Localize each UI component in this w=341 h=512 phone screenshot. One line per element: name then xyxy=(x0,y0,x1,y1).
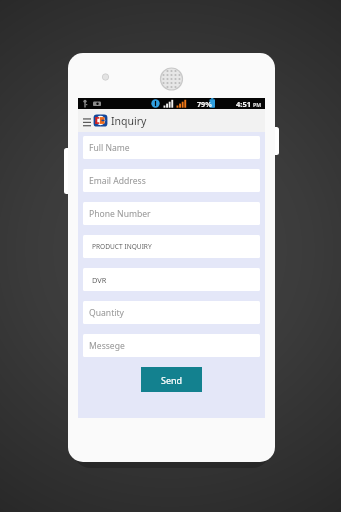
button[interactable]: Send xyxy=(141,367,202,392)
button[interactable]: PRODUCT INQUIRY xyxy=(83,235,260,258)
staticText: Quantity xyxy=(89,307,124,319)
button[interactable]: DVR xyxy=(83,268,260,291)
staticText: Messege xyxy=(89,340,125,352)
staticText: Send xyxy=(161,374,183,386)
button[interactable]: Messege xyxy=(83,334,260,357)
button[interactable]: Full Name xyxy=(83,136,260,159)
staticText: DVR xyxy=(92,275,107,285)
staticText: Inquiry xyxy=(111,114,147,128)
staticText: 4:51 xyxy=(236,99,251,109)
staticText: Email Address xyxy=(89,175,146,187)
staticText: 79% xyxy=(197,99,212,109)
button[interactable]: Open navigation menu xyxy=(81,111,92,131)
button[interactable]: Quantity xyxy=(83,301,260,324)
staticText: PM xyxy=(253,101,262,108)
button[interactable]: Phone Number xyxy=(83,202,260,225)
button[interactable]: Email Address xyxy=(83,169,260,192)
other: App logo xyxy=(93,113,108,128)
staticText: Full Name xyxy=(89,142,130,154)
staticText: PRODUCT INQUIRY xyxy=(92,242,152,251)
staticText: Phone Number xyxy=(89,208,151,220)
